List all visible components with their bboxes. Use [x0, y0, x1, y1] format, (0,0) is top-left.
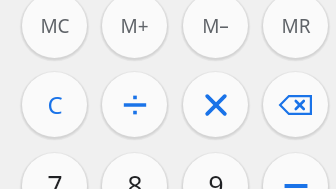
staticText: MR [281, 13, 311, 39]
staticText: 8 [127, 167, 143, 189]
button[interactable]: 8 [102, 153, 167, 189]
button[interactable] [263, 153, 328, 189]
staticText: 9 [208, 167, 224, 189]
button[interactable]: M+ [102, 0, 167, 58]
button[interactable] [102, 72, 167, 137]
staticText: 7 [47, 167, 63, 189]
button[interactable]: MC [22, 0, 87, 58]
button[interactable]: MR [263, 0, 328, 58]
staticText: C [47, 88, 63, 121]
button[interactable]: 7 [22, 153, 87, 189]
button[interactable]: 9 [183, 153, 248, 189]
button[interactable] [183, 72, 248, 137]
staticText: M+ [120, 13, 149, 39]
button[interactable]: M– [183, 0, 248, 58]
button[interactable]: Backspace [263, 72, 328, 137]
staticText: MC [40, 13, 70, 39]
button[interactable]: C [22, 72, 87, 137]
staticText: M– [202, 13, 229, 39]
